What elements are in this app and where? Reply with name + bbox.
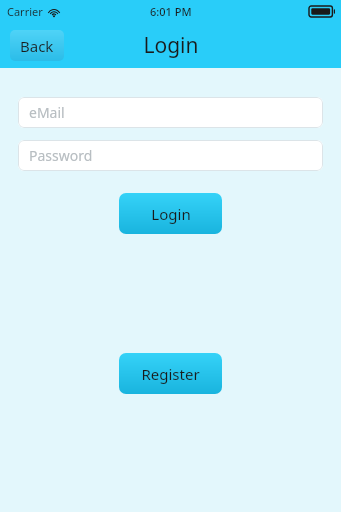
button[interactable]: Back (10, 30, 64, 61)
staticText: 6:01 PM (150, 4, 192, 19)
staticText: Register (141, 364, 200, 384)
staticText: Carrier (7, 4, 43, 19)
button[interactable]: Password (18, 140, 323, 171)
button[interactable]: eMail (18, 97, 323, 128)
staticText: Back (20, 36, 54, 56)
button[interactable]: Register (119, 353, 222, 394)
staticText: Login (143, 31, 199, 60)
staticText: Password (29, 146, 93, 165)
button[interactable]: Login (119, 193, 222, 234)
staticText: Login (151, 204, 191, 224)
staticText: eMail (29, 103, 65, 122)
